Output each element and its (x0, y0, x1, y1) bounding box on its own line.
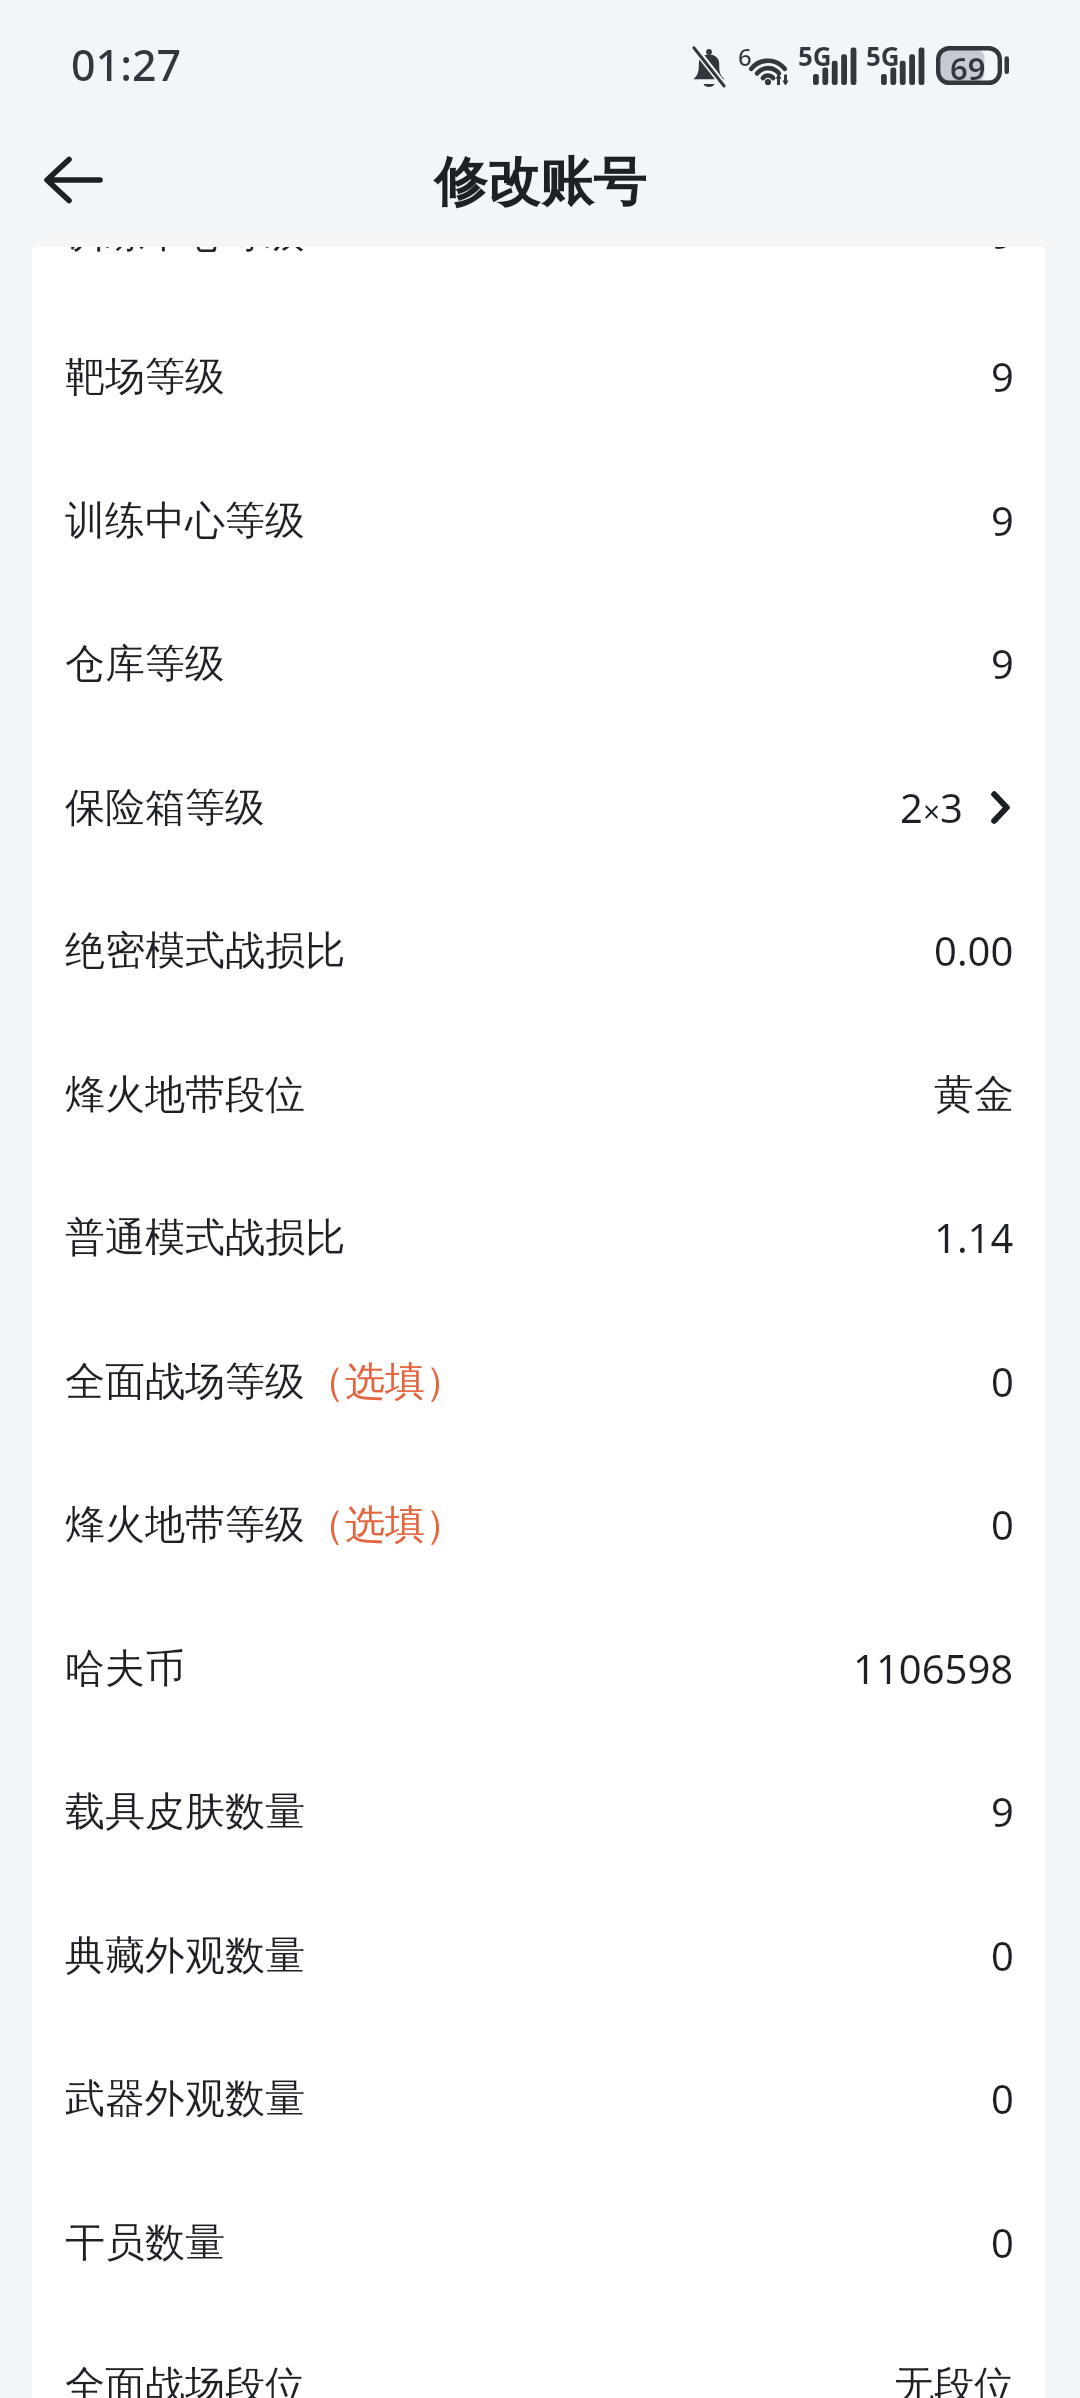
staticText: 修改账号 (0, 149, 1080, 216)
button[interactable]: 保险箱等级 (32, 735, 1045, 879)
staticText: 9 (991, 349, 1014, 403)
staticText: 全面战场等级（选填） (65, 1356, 465, 1406)
staticText: 9 (991, 247, 1014, 260)
staticText: 1.14 (934, 1210, 1014, 1264)
staticText: 01:27 (71, 35, 182, 94)
button[interactable]: 仓库等级 (32, 591, 1045, 735)
staticText: 6 (738, 40, 752, 73)
button[interactable]: 全面战场等级（选填） (32, 1309, 1045, 1453)
staticText: 全面战场段位 (65, 2360, 305, 2398)
staticText: 5G (866, 38, 900, 73)
button[interactable]: 哈夫币 (32, 1596, 1045, 1740)
staticText: 普通模式战损比 (65, 1212, 345, 1262)
button[interactable]: 靶场等级 (32, 304, 1045, 448)
staticText: 黄金 (934, 1069, 1014, 1119)
staticText: 1106598 (853, 1641, 1014, 1695)
button[interactable]: 烽火地带等级（选填） (32, 1452, 1045, 1596)
staticText: 哈夫币 (65, 1643, 185, 1693)
staticText: 9 (991, 1784, 1014, 1838)
staticText: 绝密模式战损比 (65, 925, 345, 975)
staticText: 靶场等级 (65, 351, 225, 401)
button[interactable]: 绝密模式战损比 (32, 878, 1045, 1022)
staticText: 武器外观数量 (65, 2073, 305, 2123)
staticText: 仓库等级 (65, 638, 225, 688)
staticText: 训练中心等级 (65, 495, 305, 545)
staticText: 5G (798, 38, 832, 73)
button[interactable]: 全面战场段位 (32, 2313, 1045, 2398)
button[interactable]: 训练中心等级 (32, 448, 1045, 592)
staticText: 训练中心等级 (65, 247, 305, 258)
staticText: 69 (950, 47, 986, 89)
staticText: 烽火地带等级（选填） (65, 1499, 465, 1549)
staticText: 0 (991, 1928, 1014, 1982)
staticText: 0 (991, 2071, 1014, 2125)
staticText: 无段位 (894, 2360, 1014, 2398)
button[interactable]: 载具皮肤数量 (32, 1739, 1045, 1883)
staticText: 典藏外观数量 (65, 1930, 305, 1980)
staticText: 0 (991, 1354, 1014, 1408)
staticText: 载具皮肤数量 (65, 1786, 305, 1836)
button[interactable]: 典藏外观数量 (32, 1883, 1045, 2027)
button[interactable]: 干员数量 (32, 2170, 1045, 2314)
staticText: 2×3 (900, 780, 963, 834)
button[interactable]: Back (28, 134, 120, 226)
staticText: 0 (991, 1497, 1014, 1551)
button[interactable]: 普通模式战损比 (32, 1165, 1045, 1309)
staticText: 0 (991, 2215, 1014, 2269)
button[interactable]: 训练中心等级 (32, 247, 1045, 305)
button[interactable]: 烽火地带段位 (32, 1022, 1045, 1166)
staticText: 9 (991, 493, 1014, 547)
staticText: 0.00 (934, 923, 1014, 977)
staticText: 干员数量 (65, 2217, 225, 2267)
staticText: 9 (991, 636, 1014, 690)
staticText: 保险箱等级 (65, 782, 265, 832)
staticText: 烽火地带段位 (65, 1069, 305, 1119)
button[interactable]: 武器外观数量 (32, 2026, 1045, 2170)
